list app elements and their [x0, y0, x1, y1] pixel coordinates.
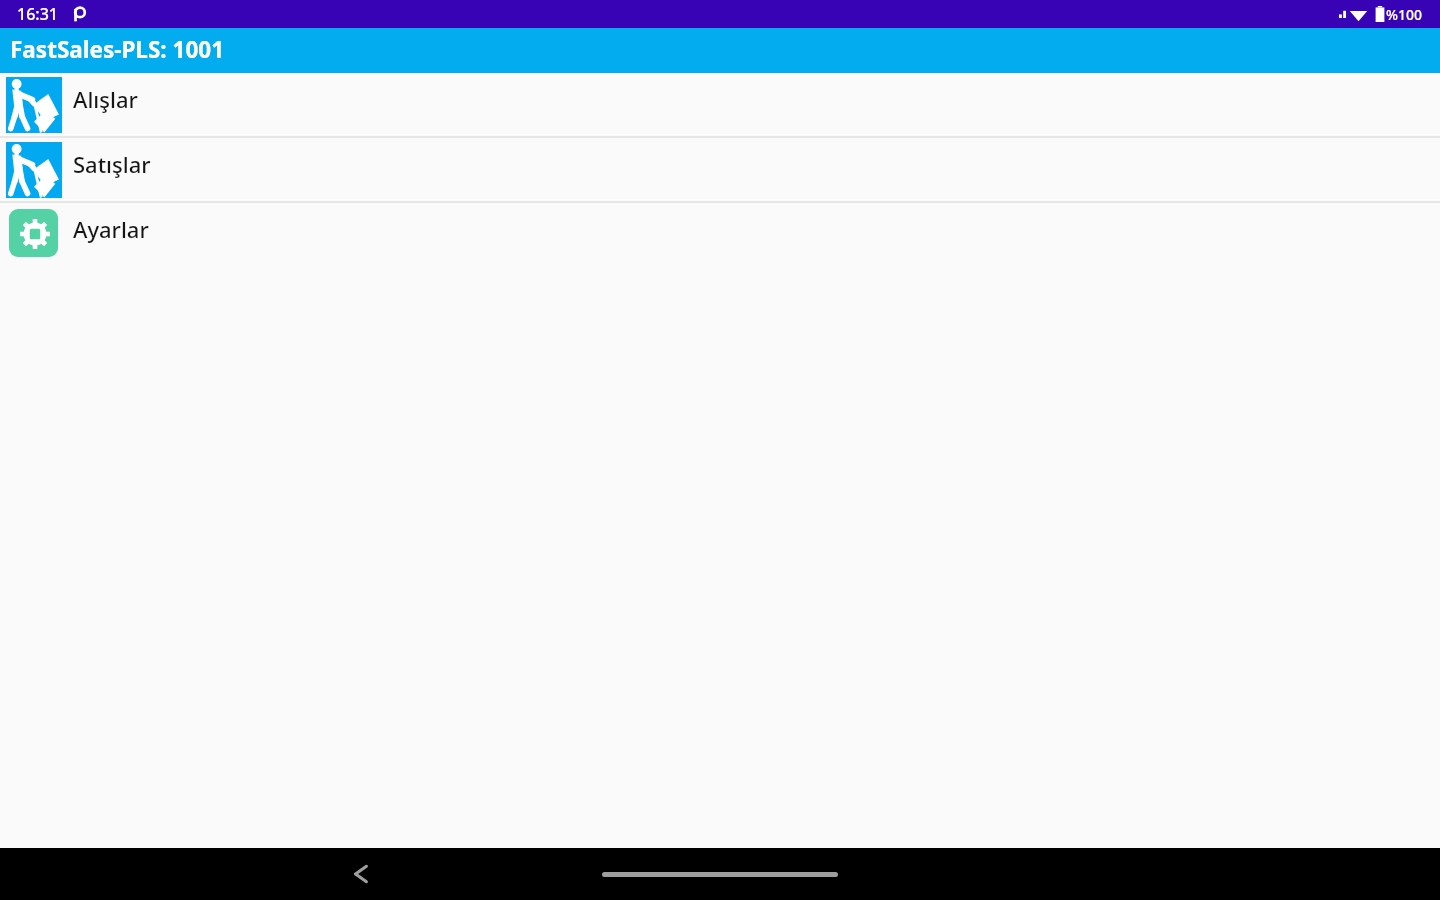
staticText: Satışlar: [73, 149, 151, 179]
button[interactable]: Alışlar: [0, 73, 1440, 134]
button[interactable]: Ayarlar: [0, 203, 1440, 264]
staticText: Alışlar: [73, 84, 138, 114]
staticText: 16:31: [17, 3, 58, 25]
button[interactable]: Back: [339, 852, 383, 896]
button[interactable]: Home: [602, 872, 838, 877]
staticText: %100: [1386, 5, 1422, 24]
staticText: FastSales-PLS: 1001: [10, 34, 224, 65]
button[interactable]: Satışlar: [0, 138, 1440, 199]
staticText: Ayarlar: [73, 214, 149, 244]
